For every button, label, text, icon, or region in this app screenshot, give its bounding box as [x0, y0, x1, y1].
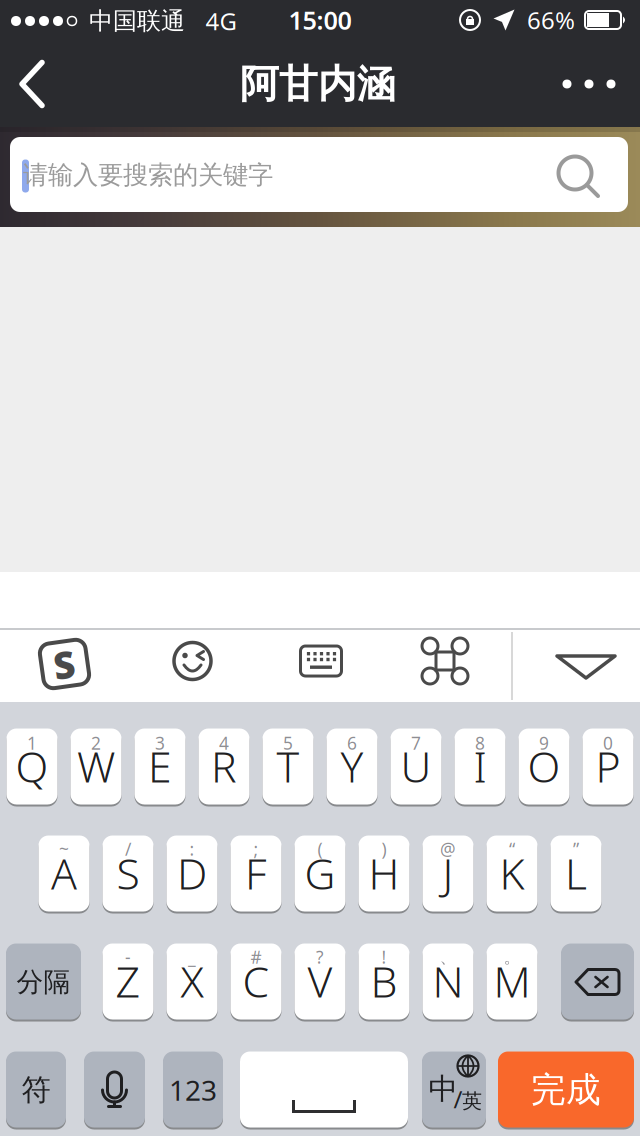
- staticText: E: [148, 738, 172, 794]
- staticText: 完成: [531, 1069, 601, 1111]
- button[interactable]: #: [230, 944, 281, 1020]
- staticText: 。: [503, 946, 520, 968]
- button[interactable]: 完成: [498, 1052, 634, 1128]
- staticText: 请输入要搜索的关键字: [23, 159, 273, 190]
- staticText: O: [527, 738, 560, 794]
- button[interactable]: 5: [262, 729, 313, 805]
- staticText: /: [453, 1083, 462, 1115]
- staticText: “: [509, 837, 515, 860]
- staticText: -: [125, 945, 131, 968]
- button[interactable]: !: [358, 944, 409, 1020]
- staticText: M: [493, 953, 530, 1009]
- staticText: :: [189, 837, 194, 860]
- staticText: 123: [169, 1071, 217, 1109]
- button[interactable]: 4: [198, 729, 249, 805]
- staticText: G: [304, 845, 335, 901]
- staticText: _: [188, 945, 196, 968]
- staticText: L: [565, 845, 587, 901]
- staticText: P: [595, 738, 620, 794]
- staticText: 5: [283, 731, 293, 754]
- staticText: 英: [462, 1089, 482, 1113]
- button[interactable]: :: [166, 836, 217, 912]
- staticText: R: [211, 738, 237, 794]
- staticText: 8: [475, 731, 485, 754]
- staticText: J: [442, 845, 453, 901]
- button[interactable]: 1: [6, 729, 57, 805]
- staticText: /: [125, 837, 131, 860]
- staticText: W: [77, 738, 115, 794]
- button[interactable]: 分隔: [6, 944, 81, 1020]
- button[interactable]: /: [102, 836, 153, 912]
- button[interactable]: Search: [558, 156, 604, 202]
- staticText: V: [307, 953, 332, 1009]
- button[interactable]: 符: [6, 1052, 66, 1128]
- button[interactable]: _: [166, 944, 217, 1020]
- button[interactable]: Sogou: [36, 636, 92, 692]
- staticText: 2: [91, 731, 101, 754]
- staticText: S: [116, 845, 139, 901]
- staticText: 中: [428, 1071, 457, 1107]
- button[interactable]: Back: [9, 50, 55, 118]
- button[interactable]: 。: [486, 944, 537, 1020]
- staticText: 符: [21, 1072, 50, 1108]
- staticText: I: [473, 738, 486, 794]
- button[interactable]: Dictation: [84, 1052, 145, 1128]
- staticText: ;: [253, 837, 258, 860]
- staticText: 1: [27, 731, 37, 754]
- staticText: X: [180, 953, 203, 1009]
- staticText: K: [499, 845, 524, 901]
- staticText: N: [432, 953, 463, 1009]
- button[interactable]: 7: [390, 729, 441, 805]
- staticText: T: [276, 738, 299, 794]
- button[interactable]: “: [486, 836, 537, 912]
- button[interactable]: ): [358, 836, 409, 912]
- staticText: 6: [347, 731, 357, 754]
- staticText: (: [317, 837, 322, 860]
- staticText: 3: [155, 731, 165, 754]
- button[interactable]: Keyboard: [293, 633, 349, 689]
- button[interactable]: 8: [454, 729, 505, 805]
- staticText: 分隔: [16, 966, 70, 998]
- button[interactable]: Delete: [561, 944, 634, 1020]
- staticText: 7: [411, 731, 421, 754]
- staticText: S: [53, 639, 75, 689]
- staticText: 15:00: [288, 3, 351, 37]
- button[interactable]: 123: [163, 1052, 223, 1128]
- button[interactable]: (: [294, 836, 345, 912]
- button[interactable]: Dismiss keyboard: [543, 642, 629, 692]
- button[interactable]: 3: [134, 729, 185, 805]
- button[interactable]: 、: [422, 944, 473, 1020]
- button[interactable]: Space: [240, 1052, 408, 1128]
- staticText: Z: [115, 953, 140, 1009]
- staticText: 阿甘内涵: [240, 60, 396, 108]
- button[interactable]: Switch language: [422, 1052, 486, 1128]
- staticText: 9: [539, 731, 549, 754]
- staticText: #: [250, 945, 261, 968]
- staticText: Q: [15, 738, 48, 794]
- staticText: 0: [603, 731, 613, 754]
- button[interactable]: 2: [70, 729, 121, 805]
- button[interactable]: More: [556, 62, 622, 106]
- staticText: C: [242, 953, 269, 1009]
- button[interactable]: 9: [518, 729, 569, 805]
- staticText: 、: [439, 946, 456, 968]
- staticText: B: [370, 953, 397, 1009]
- staticText: ?: [316, 945, 324, 968]
- button[interactable]: @: [422, 836, 473, 912]
- button[interactable]: Emoji: [164, 633, 220, 689]
- staticText: D: [177, 845, 207, 901]
- button[interactable]: ;: [230, 836, 281, 912]
- button[interactable]: Search field: [10, 137, 628, 212]
- button[interactable]: ?: [294, 944, 345, 1020]
- button[interactable]: Shortcuts: [417, 633, 473, 689]
- button[interactable]: -: [102, 944, 153, 1020]
- staticText: H: [368, 845, 399, 901]
- button[interactable]: ”: [550, 836, 601, 912]
- button[interactable]: 6: [326, 729, 377, 805]
- staticText: ~: [59, 837, 69, 860]
- staticText: @: [440, 837, 456, 860]
- staticText: A: [51, 845, 77, 901]
- button[interactable]: ~: [38, 836, 89, 912]
- staticText: ”: [573, 837, 579, 860]
- button[interactable]: 0: [582, 729, 633, 805]
